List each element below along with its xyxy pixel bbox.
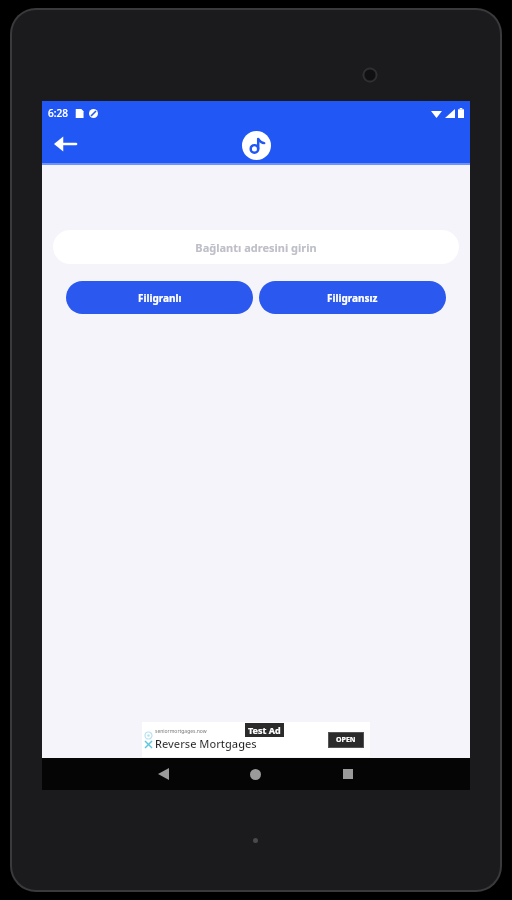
staticText: seniormortgages.now [155, 728, 207, 735]
staticText: Test Ad [248, 724, 281, 736]
button[interactable]: Recent apps [332, 758, 364, 790]
button[interactable]: Back [46, 125, 84, 163]
button[interactable]: Bağlantı adresini girin [53, 230, 459, 264]
button[interactable]: Filigransız [259, 281, 446, 314]
staticText: Reverse Mortgages [155, 736, 257, 751]
staticText: 6:28 [48, 106, 68, 120]
button[interactable]: Back [147, 758, 179, 790]
staticText: Filigranlı [138, 291, 182, 305]
staticText: Filigransız [327, 291, 378, 305]
button[interactable]: Filigranlı [66, 281, 253, 314]
staticText: OPEN [336, 735, 356, 745]
staticText: Bağlantı adresini girin [195, 240, 317, 255]
button[interactable]: seniormortgages.now [142, 722, 370, 757]
button[interactable]: OPEN [328, 732, 364, 748]
button[interactable]: Home [239, 758, 271, 790]
button[interactable]: TikTok logo [242, 131, 271, 160]
